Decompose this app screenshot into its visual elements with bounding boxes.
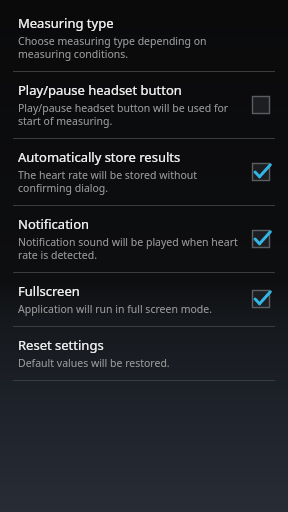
staticText: Default values will be restored. <box>18 356 170 370</box>
button[interactable]: Notification <box>0 206 288 272</box>
button[interactable]: Automatically store results <box>0 139 288 205</box>
button[interactable]: Notification <box>244 222 278 256</box>
button[interactable]: Play/pause headset button <box>244 88 278 122</box>
staticText: The heart rate will be stored without co… <box>18 168 238 195</box>
button[interactable]: Fullscreen <box>244 282 278 316</box>
staticText: Automatically store results <box>18 148 181 166</box>
staticText: Fullscreen <box>18 282 80 300</box>
button[interactable]: Play/pause headset button <box>0 72 288 138</box>
button[interactable]: Automatically store results <box>244 155 278 189</box>
button[interactable]: Reset settings <box>0 327 288 380</box>
staticText: Play/pause headset button will be used f… <box>18 101 238 128</box>
staticText: Notification sound will be played when h… <box>18 235 238 262</box>
staticText: Reset settings <box>18 336 104 354</box>
staticText: Play/pause headset button <box>18 81 182 99</box>
staticText: Application will run in full screen mode… <box>18 302 212 316</box>
staticText: Notification <box>18 215 90 233</box>
button[interactable]: Measuring type <box>0 5 288 71</box>
button[interactable]: Fullscreen <box>0 273 288 326</box>
staticText: Measuring type <box>18 14 114 32</box>
staticText: Choose measuring type depending on measu… <box>18 34 238 61</box>
